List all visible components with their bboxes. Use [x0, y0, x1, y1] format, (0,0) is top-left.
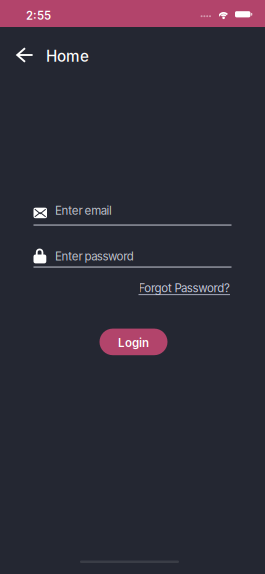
staticText: Enter password — [55, 249, 134, 263]
button[interactable]: Login — [99, 329, 167, 355]
staticText: Home — [46, 47, 89, 65]
button[interactable]: Enter password — [33, 248, 231, 268]
staticText: 2:55 — [26, 9, 51, 22]
staticText: Login — [118, 336, 149, 350]
staticText: Enter email — [55, 204, 112, 217]
button[interactable] — [13, 43, 37, 67]
button[interactable]: Enter email — [33, 204, 231, 226]
staticText: Forgot Password? — [138, 281, 230, 295]
button[interactable]: Forgot Password? — [138, 281, 230, 295]
